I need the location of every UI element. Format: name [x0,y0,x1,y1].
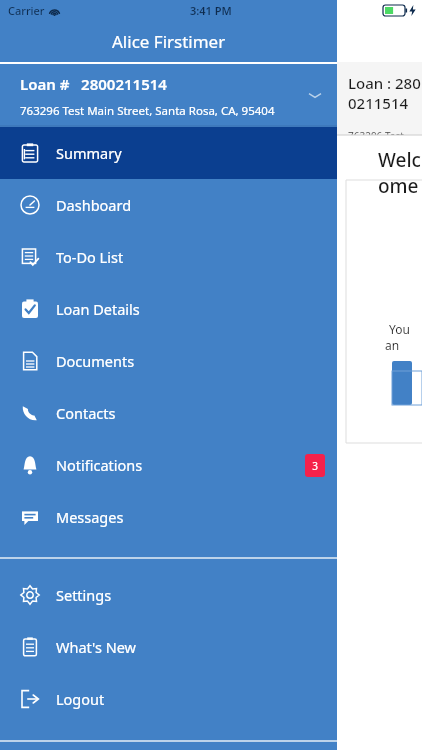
staticText: 3:41 PM [190,3,232,18]
staticText: Alice Firstimer [112,30,226,53]
staticText: You [389,321,410,337]
staticText: Carrier [8,3,45,18]
staticText: Loan # 2800211514 [20,74,167,94]
button[interactable]: Logout [0,673,337,725]
staticText: Dashboard [56,195,132,215]
staticText: Welcome [378,147,422,199]
staticText: What's New [56,637,136,657]
staticText: Settings [56,585,112,605]
button[interactable]: Documents [0,335,337,387]
staticText: 763296 Test Main Street, Santa Rosa [348,129,422,135]
staticText: 763296 Test Main Street, Santa Rosa, CA,… [20,103,275,119]
staticText: 3 [312,459,318,473]
button[interactable]: Dashboard [0,179,337,231]
button[interactable] [392,414,412,448]
button[interactable]: Settings [0,569,337,621]
button[interactable]: Loan # 2800211514 [0,64,337,125]
staticText: Summary [56,143,122,163]
button[interactable]: Notifications [0,439,337,491]
staticText: Notifications [56,455,143,475]
staticText: an [385,337,400,353]
staticText: Contacts [56,403,116,423]
button[interactable] [392,361,412,405]
staticText: To-Do List [56,247,124,267]
staticText: Loan Details [56,299,140,319]
button[interactable]: Messages [0,491,337,543]
button[interactable]: To-Do List [0,231,337,283]
staticText: Messages [56,507,124,527]
button[interactable]: What's New [0,621,337,673]
staticText: Logout [56,689,105,709]
staticText: Documents [56,351,135,371]
button[interactable]: Contacts [0,387,337,439]
button[interactable]: Loan Details [0,283,337,335]
staticText: Loan : 2800211514 [348,73,422,113]
button[interactable]: Summary [0,127,337,179]
